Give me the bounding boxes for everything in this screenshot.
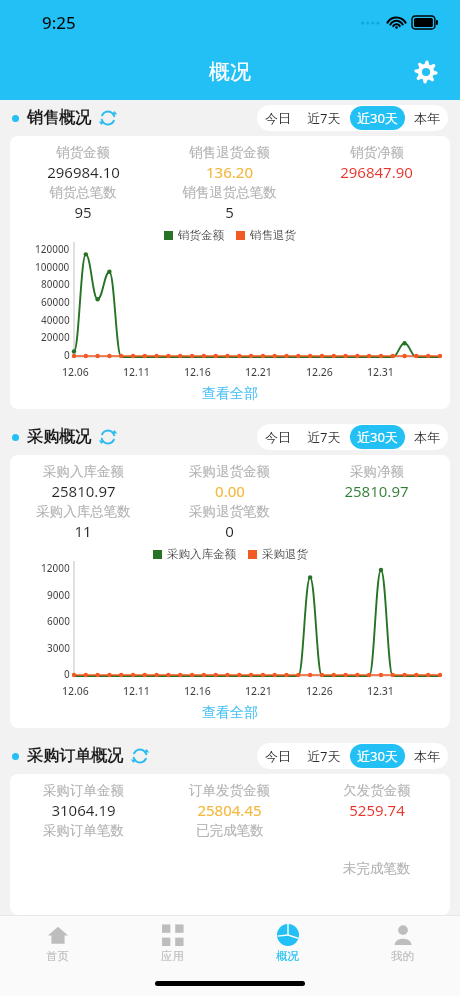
staticText: 采购退货 [262,547,308,561]
staticText: 296847.90 [340,162,413,182]
staticText: 采购退货笔数 [189,503,270,520]
button[interactable]: 本年 [407,426,447,448]
button[interactable]: 查看全部 [10,379,450,409]
staticText: 0.00 [215,481,245,501]
button[interactable]: 本年 [407,107,447,129]
staticText: 采购订单金额 [43,782,124,799]
staticText: 12.26 [306,365,333,379]
button[interactable]: 概况 [230,916,345,970]
staticText: 首页 [46,949,69,963]
staticText: 12.16 [184,365,211,379]
staticText: 采购概况 [27,427,91,447]
button[interactable]: 近7天 [300,106,348,130]
staticText: 296984.10 [47,162,120,182]
staticText: 未完成笔数 [343,860,411,877]
staticText: 本年 [414,110,440,126]
staticText: 0 [64,348,70,362]
staticText: 25804.45 [197,800,262,820]
button[interactable]: Refresh [97,107,119,129]
staticText: 今日 [265,110,291,126]
staticText: 12.06 [62,365,89,379]
staticText: 0 [64,667,70,681]
staticText: 销货金额 [178,228,224,242]
staticText: 12.11 [123,365,150,379]
button[interactable]: 我的 [345,916,460,970]
staticText: 近7天 [307,428,341,446]
staticText: 31064.19 [51,800,116,820]
staticText: 欠发货金额 [343,782,411,799]
staticText: 应用 [161,949,184,963]
button[interactable]: 今日 [258,745,298,767]
button[interactable]: Refresh [97,426,119,448]
staticText: 136.20 [206,162,253,182]
staticText: 今日 [265,429,291,445]
staticText: 5259.74 [349,800,405,820]
staticText: 采购入库金额 [43,463,124,480]
button[interactable]: 近7天 [300,425,348,449]
staticText: 本年 [414,429,440,445]
staticText: 销售退货金额 [189,144,270,161]
button[interactable]: 今日 [258,426,298,448]
staticText: 已完成笔数 [196,822,264,839]
staticText: 12.21 [245,365,272,379]
staticText: 80000 [41,277,70,291]
button[interactable]: 近7天 [300,744,348,768]
staticText: 近7天 [307,747,341,765]
staticText: 概况 [209,59,251,85]
staticText: 12.06 [62,684,89,698]
staticText: 20000 [41,330,70,344]
button[interactable]: 近30天 [350,106,405,130]
staticText: 近7天 [307,109,341,127]
staticText: 60000 [41,295,70,309]
staticText: 采购订单概况 [27,746,123,766]
button[interactable]: 近30天 [350,425,405,449]
staticText: 25810.97 [51,481,116,501]
staticText: 12000 [41,561,70,575]
button[interactable]: Settings [406,52,446,92]
staticText: 5 [225,202,234,222]
staticText: 6000 [47,614,70,628]
staticText: 销货总笔数 [49,184,117,201]
staticText: 今日 [265,748,291,764]
button[interactable]: 本年 [407,745,447,767]
staticText: 100000 [35,260,70,274]
staticText: 0 [225,521,234,541]
staticText: 采购入库金额 [167,547,236,561]
staticText: 概况 [276,949,299,963]
button[interactable]: 近30天 [350,744,405,768]
button[interactable]: 应用 [115,916,230,970]
staticText: 采购入库总笔数 [36,503,131,520]
staticText: 40000 [41,313,70,327]
staticText: 95 [74,202,92,222]
staticText: 查看全部 [202,704,258,722]
staticText: 3000 [47,641,70,655]
staticText: 12.16 [184,684,211,698]
staticText: 12.11 [123,684,150,698]
staticText: 采购退货金额 [189,463,270,480]
button[interactable]: Refresh [129,745,151,767]
staticText: 订单发货金额 [189,782,270,799]
staticText: 采购净额 [350,463,404,480]
staticText: 120000 [35,242,70,256]
button[interactable]: 查看全部 [10,698,450,728]
staticText: 销货净额 [350,144,404,161]
staticText: 25810.97 [344,481,409,501]
staticText: 11 [74,521,92,541]
staticText: 12.26 [306,684,333,698]
staticText: 采购订单笔数 [43,822,124,839]
staticText: 近30天 [357,747,398,765]
button[interactable]: 首页 [0,916,115,970]
staticText: 本年 [414,748,440,764]
staticText: 销售退货总笔数 [182,184,277,201]
staticText: 9:25 [42,11,76,34]
staticText: 销货金额 [56,144,110,161]
button[interactable]: 今日 [258,107,298,129]
staticText: 12.21 [245,684,272,698]
staticText: 12.31 [367,365,394,379]
staticText: 销售退货 [250,228,296,242]
staticText: 12.31 [367,684,394,698]
staticText: 我的 [391,949,414,963]
staticText: 近30天 [357,428,398,446]
staticText: 9000 [47,588,70,602]
staticText: 销售概况 [27,108,91,128]
